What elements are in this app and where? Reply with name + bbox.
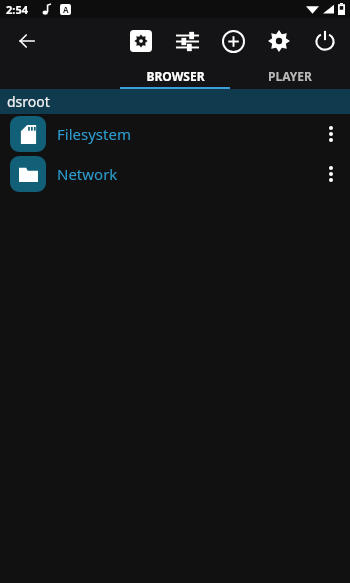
button[interactable]: Network xyxy=(0,154,350,194)
button[interactable]: Back xyxy=(8,22,46,60)
staticText: 2:54 xyxy=(6,2,28,17)
staticText: Filesystem xyxy=(57,124,131,144)
button[interactable]: PLAYER xyxy=(230,64,350,87)
button[interactable]: Settings xyxy=(256,18,302,64)
staticText: PLAYER xyxy=(268,68,312,84)
button[interactable]: More options for Network xyxy=(312,155,350,193)
staticText: dsroot xyxy=(7,92,50,111)
button[interactable]: More options for Filesystem xyxy=(312,115,350,153)
button[interactable]: BROWSER xyxy=(120,64,230,87)
staticText: BROWSER xyxy=(146,68,205,84)
staticText: Network xyxy=(57,164,118,184)
button[interactable]: Power off xyxy=(302,18,348,64)
button[interactable]: Filesystem xyxy=(0,114,350,154)
button[interactable]: Equalizer xyxy=(164,18,210,64)
button[interactable]: Plugin settings xyxy=(118,18,164,64)
button[interactable]: Add xyxy=(210,18,256,64)
staticText: A xyxy=(63,4,69,15)
button[interactable]: dsroot xyxy=(0,89,350,114)
